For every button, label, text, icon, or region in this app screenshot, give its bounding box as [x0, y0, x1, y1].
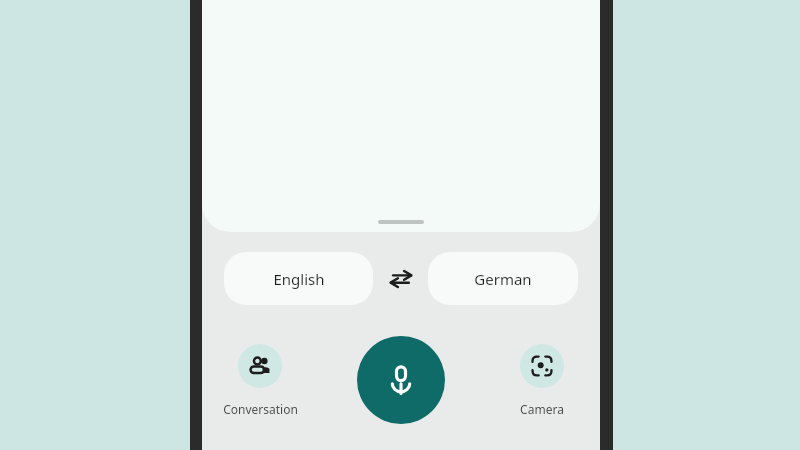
button[interactable]: German: [428, 252, 578, 305]
button[interactable]: English: [224, 252, 373, 305]
staticText: German: [474, 269, 532, 289]
staticText: Conversation: [223, 401, 298, 417]
staticText: English: [273, 269, 325, 289]
button[interactable]: Conversation: [205, 336, 315, 417]
button[interactable]: Swap languages: [373, 252, 428, 305]
button[interactable]: Camera: [487, 336, 597, 417]
staticText: Camera: [520, 401, 564, 417]
button[interactable]: Speak: [357, 336, 445, 424]
